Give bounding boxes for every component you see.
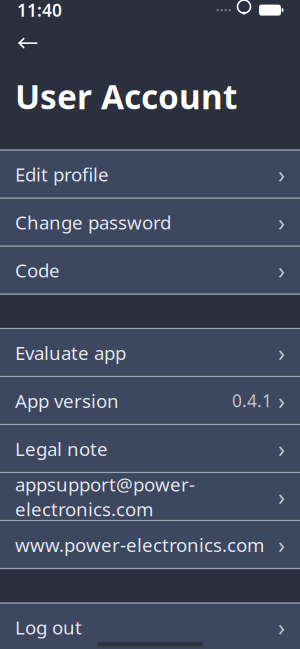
staticText: Legal note	[15, 436, 108, 461]
staticText: Evaluate app	[15, 340, 126, 365]
staticText: appsupport@power-electronics.com	[15, 472, 195, 521]
staticText: Code	[15, 258, 60, 282]
button[interactable]: Back	[13, 32, 43, 54]
staticText: 11:40	[17, 0, 62, 22]
button[interactable]: Legal note	[0, 425, 300, 472]
staticText: 0.4.1	[232, 389, 272, 412]
button[interactable]: appsupport@power-electronics.com	[0, 473, 300, 520]
staticText: ›	[278, 612, 285, 642]
staticText: www.power-electronics.com	[15, 532, 264, 557]
staticText: ›	[278, 530, 285, 560]
staticText: ›	[278, 482, 285, 512]
button[interactable]: App version	[0, 377, 300, 424]
staticText: ›	[278, 159, 285, 189]
staticText: Log out	[15, 615, 82, 639]
staticText: ›	[278, 386, 285, 416]
staticText: ›	[278, 434, 285, 464]
button[interactable]: Edit profile	[0, 151, 300, 197]
button[interactable]: Code	[0, 247, 300, 293]
staticText: ›	[278, 255, 285, 285]
button[interactable]: Evaluate app	[0, 329, 300, 376]
staticText: Edit profile	[15, 162, 109, 186]
button[interactable]: Change password	[0, 199, 300, 245]
staticText: Change password	[15, 210, 171, 234]
staticText: ›	[278, 207, 285, 237]
staticText: User Account	[15, 74, 237, 118]
button[interactable]: Log out	[0, 604, 300, 649]
button[interactable]: www.power-electronics.com	[0, 521, 300, 568]
staticText: ›	[278, 338, 285, 368]
staticText: App version	[15, 388, 119, 413]
